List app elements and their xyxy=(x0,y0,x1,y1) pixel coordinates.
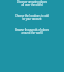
staticText: Choose the locations to add to your acco… xyxy=(0,14,64,20)
staticText: Discover amazing places all over the wor… xyxy=(0,0,64,6)
staticText: Browse thousands of places around the wo… xyxy=(0,28,64,34)
